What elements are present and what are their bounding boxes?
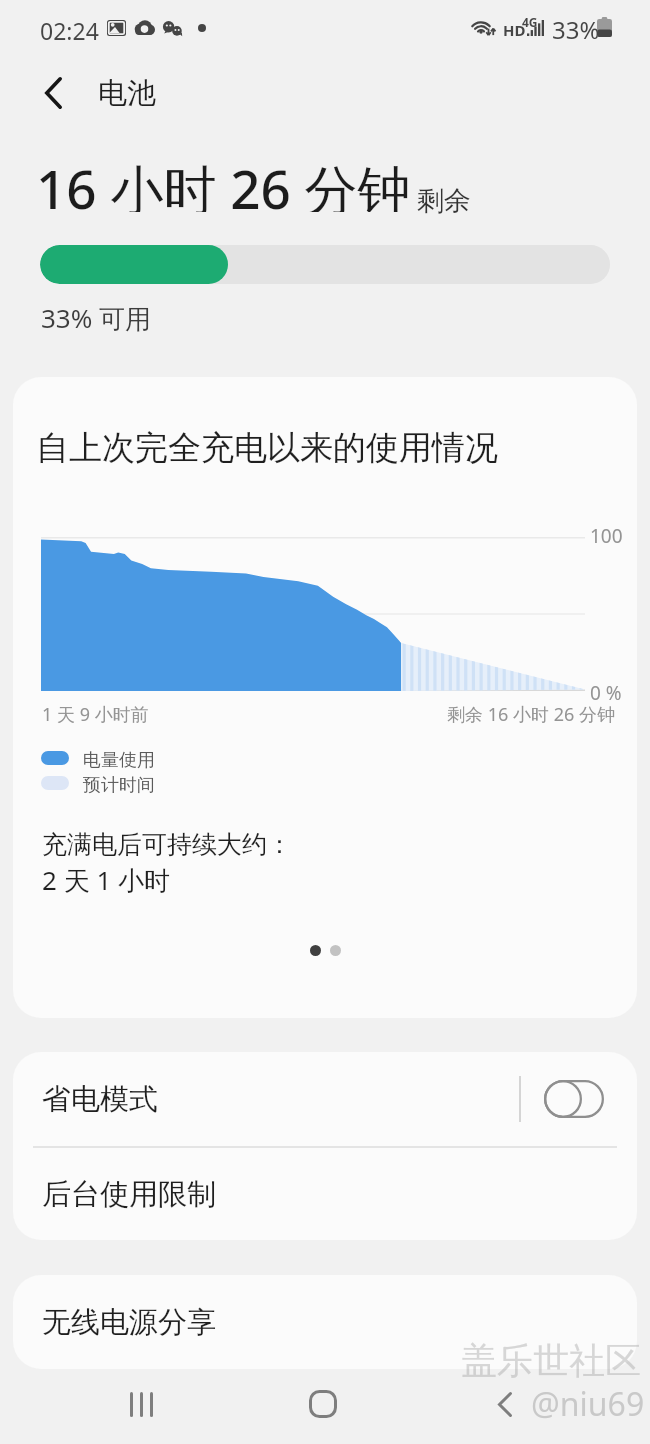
staticText: @niu69 (531, 1382, 645, 1426)
button[interactable]: Back (478, 1377, 532, 1431)
staticText: 1 天 9 小时前 (42, 702, 149, 727)
staticText: 预计时间 (83, 774, 155, 797)
staticText: 充满电后可持续大约： (42, 829, 292, 860)
staticText: 电池 (98, 75, 156, 112)
button[interactable]: 后台使用限制 (13, 1148, 637, 1240)
button[interactable]: Recent apps (114, 1377, 168, 1431)
staticText: HD (503, 20, 526, 40)
staticText: 省电模式 (42, 1081, 158, 1118)
button[interactable]: Back (27, 67, 79, 119)
staticText: 剩余 (417, 184, 471, 218)
staticText: 33% (552, 13, 600, 46)
staticText: 剩余 16 小时 26 分钟 (447, 702, 615, 727)
staticText: 100 (590, 523, 623, 549)
button[interactable]: 无线电源分享 (13, 1275, 637, 1369)
staticText: 02:24 (40, 15, 99, 46)
button[interactable]: 省电模式 (13, 1052, 637, 1146)
staticText: 33% 可用 (41, 300, 152, 334)
staticText: 16 小时 26 分钟 (36, 152, 411, 212)
staticText: 4G (522, 14, 538, 30)
staticText: 2 天 1 小时 (42, 862, 171, 898)
button[interactable]: Toggle power saving mode (544, 1080, 604, 1118)
staticText: 后台使用限制 (42, 1176, 216, 1213)
staticText: 无线电源分享 (42, 1304, 216, 1341)
staticText: 盖乐世社区 (461, 1338, 641, 1383)
staticText: 自上次完全充电以来的使用情况 (36, 427, 498, 469)
staticText: 0 % (590, 680, 622, 706)
staticText: 电量使用 (83, 749, 155, 772)
button[interactable]: Home (296, 1377, 350, 1431)
